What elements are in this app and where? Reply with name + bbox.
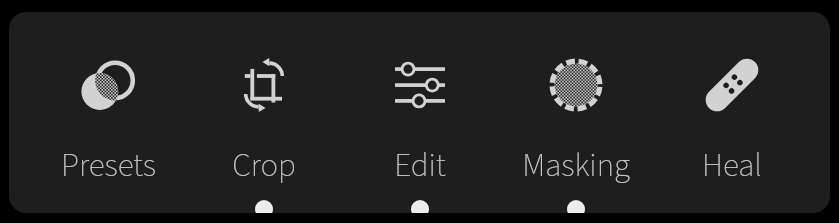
staticText: Edit	[394, 142, 446, 189]
staticText: Heal	[702, 142, 762, 189]
button[interactable]: Heal	[654, 12, 810, 213]
button[interactable]: Crop	[186, 12, 342, 213]
button[interactable]: Edit	[342, 12, 498, 213]
button[interactable]: Masking	[498, 12, 654, 213]
staticText: Presets	[61, 142, 156, 189]
staticText: Crop	[232, 142, 296, 189]
staticText: Masking	[522, 142, 630, 189]
button[interactable]: Presets	[30, 12, 186, 213]
